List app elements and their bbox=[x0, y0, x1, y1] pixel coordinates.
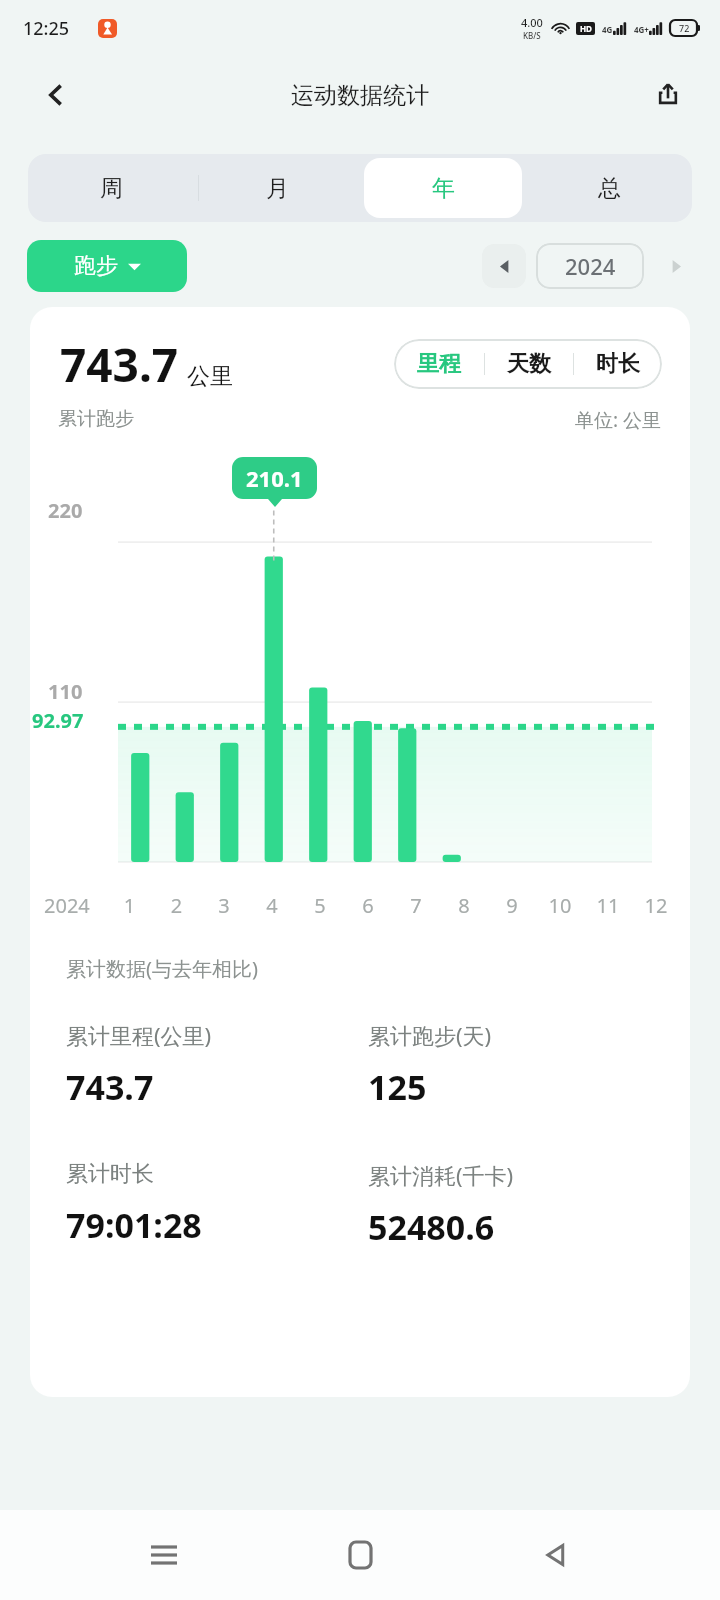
staticText: 累计数据(与去年相比) bbox=[66, 955, 258, 982]
staticText: 4.00 bbox=[521, 15, 543, 30]
staticText: 210.1 bbox=[246, 463, 303, 493]
staticText: 72 bbox=[679, 22, 690, 34]
staticText: 6 bbox=[344, 892, 392, 919]
staticText: 2024 bbox=[44, 892, 106, 919]
button[interactable]: 月 bbox=[198, 158, 356, 218]
staticText: 周 bbox=[100, 174, 123, 203]
staticText: 累计跑步 bbox=[58, 407, 134, 431]
staticText: 年 bbox=[432, 174, 455, 203]
button[interactable]: 天数 bbox=[485, 339, 573, 389]
button[interactable]: 里程 bbox=[394, 339, 484, 389]
button[interactable]: 年 bbox=[364, 158, 522, 218]
button[interactable]: 跑步 bbox=[27, 240, 187, 292]
staticText: 累计消耗(千卡) bbox=[368, 1160, 514, 1190]
staticText: 2 bbox=[153, 892, 200, 919]
button[interactable]: Recent apps bbox=[132, 1523, 196, 1587]
staticText: 7 bbox=[392, 892, 440, 919]
staticText: 10 bbox=[536, 892, 584, 919]
button[interactable]: 周 bbox=[32, 158, 190, 218]
staticText: 1 bbox=[106, 892, 153, 919]
staticText: 743.7 bbox=[66, 1064, 154, 1110]
staticText: 累计跑步(天) bbox=[368, 1020, 492, 1050]
staticText: KB/S bbox=[523, 30, 541, 41]
staticText: 里程 bbox=[417, 350, 461, 378]
button[interactable]: Home bbox=[328, 1523, 392, 1587]
button[interactable]: Share bbox=[644, 71, 692, 119]
staticText: 时长 bbox=[596, 350, 640, 378]
staticText: 累计时长 bbox=[66, 1160, 154, 1188]
staticText: 9 bbox=[488, 892, 536, 919]
staticText: 运动数据统计 bbox=[291, 81, 429, 110]
staticText: 总 bbox=[598, 174, 621, 203]
staticText: 92.97 bbox=[32, 707, 84, 734]
button[interactable]: 总 bbox=[530, 158, 688, 218]
staticText: 11 bbox=[584, 892, 632, 919]
staticText: 跑步 bbox=[74, 252, 118, 280]
staticText: 累计里程(公里) bbox=[66, 1020, 212, 1050]
staticText: 4 bbox=[248, 892, 296, 919]
staticText: 4G+ bbox=[634, 24, 649, 35]
staticText: 79:01:28 bbox=[66, 1202, 202, 1248]
staticText: 125 bbox=[368, 1064, 427, 1110]
staticText: 12 bbox=[632, 892, 680, 919]
staticText: 52480.6 bbox=[368, 1204, 495, 1250]
staticText: 天数 bbox=[507, 350, 551, 378]
staticText: 220 bbox=[48, 497, 83, 524]
staticText: 743.7 bbox=[60, 333, 179, 395]
button[interactable]: Next year bbox=[654, 244, 698, 288]
staticText: 3 bbox=[200, 892, 248, 919]
staticText: 2024 bbox=[565, 251, 616, 281]
staticText: 月 bbox=[266, 174, 289, 203]
staticText: 单位: 公里 bbox=[575, 407, 662, 433]
staticText: 110 bbox=[48, 678, 83, 705]
staticText: 8 bbox=[440, 892, 488, 919]
staticText: HD bbox=[580, 23, 592, 34]
button[interactable]: Back bbox=[32, 71, 80, 119]
staticText: 4G bbox=[602, 24, 613, 35]
button[interactable]: 2024 bbox=[536, 243, 644, 289]
staticText: 12:25 bbox=[23, 16, 70, 41]
button[interactable]: Back bbox=[524, 1523, 588, 1587]
button[interactable]: Previous year bbox=[482, 244, 526, 288]
staticText: 5 bbox=[296, 892, 344, 919]
staticText: 公里 bbox=[187, 362, 233, 391]
button[interactable]: 时长 bbox=[574, 339, 662, 389]
